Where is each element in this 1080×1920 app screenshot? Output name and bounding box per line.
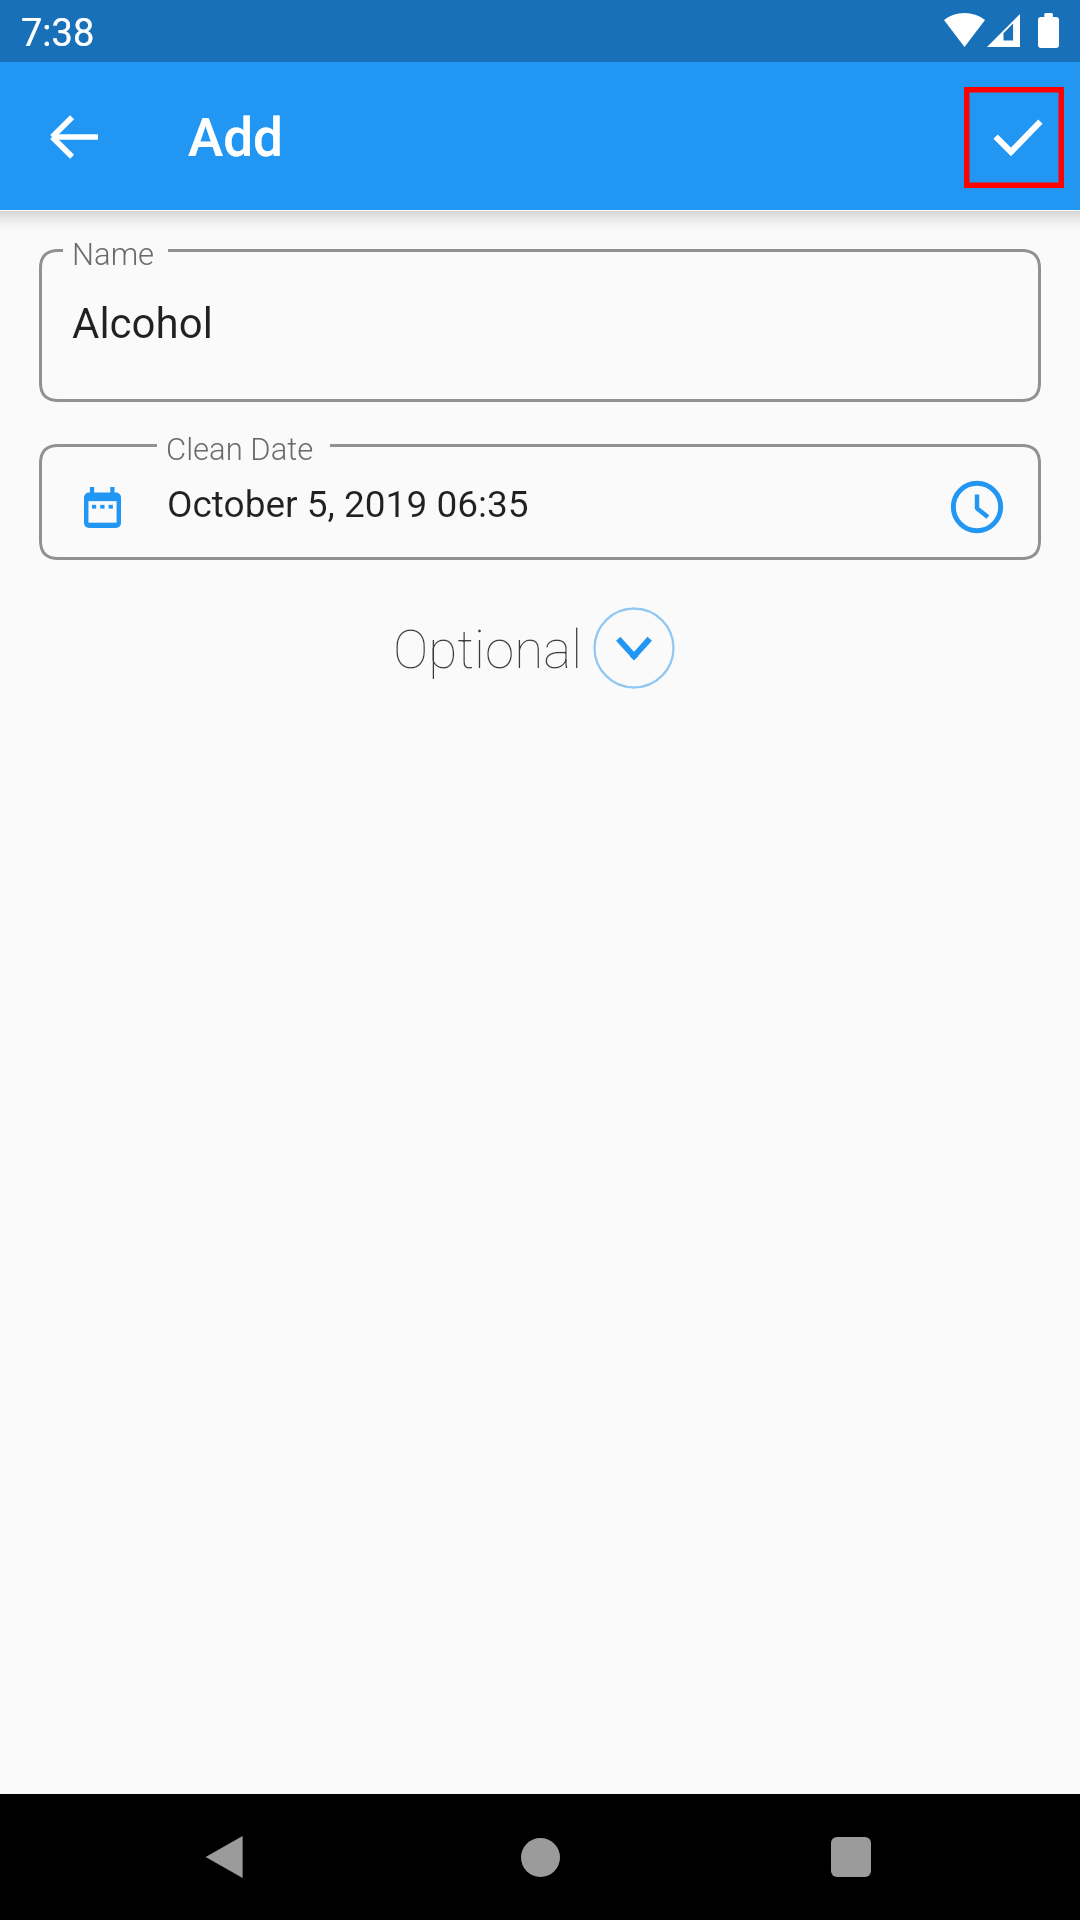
staticText: October 5, 2019 06:35 (167, 483, 529, 526)
staticText: Optional (393, 619, 583, 681)
button[interactable]: Save (968, 86, 1068, 186)
staticText: Clean Date (166, 431, 314, 467)
button[interactable]: Pick time (943, 473, 1011, 541)
button[interactable]: Show optional fields (593, 607, 675, 689)
button[interactable]: Back (177, 1809, 273, 1905)
staticText: Add (188, 107, 283, 169)
button[interactable]: Home (492, 1809, 588, 1905)
staticText: 7:38 (21, 11, 95, 56)
button[interactable]: Name (39, 249, 1041, 402)
staticText: Name (72, 236, 155, 272)
button[interactable]: Navigate up (25, 88, 122, 185)
button[interactable]: Clean Date (39, 444, 1041, 560)
staticText: Alcohol (72, 299, 213, 348)
button[interactable]: Recent apps (803, 1809, 899, 1905)
